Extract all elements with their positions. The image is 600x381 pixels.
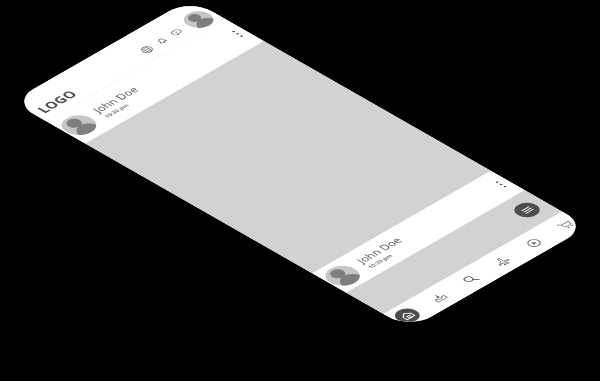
- button[interactable]: More options: [487, 176, 515, 192]
- button[interactable]: Profile: [178, 8, 220, 31]
- staticText: 10:30 pm: [102, 102, 131, 119]
- button[interactable]: Inbox: [421, 288, 456, 307]
- button[interactable]: John Doe: [312, 171, 525, 293]
- button[interactable]: Play: [516, 233, 551, 253]
- button[interactable]: Messages: [161, 24, 191, 41]
- staticText: LOGO: [32, 87, 81, 115]
- staticText: 10:30 pm: [365, 253, 395, 270]
- button[interactable]: Home: [390, 306, 425, 325]
- button[interactable]: Notifications: [146, 32, 176, 49]
- staticText: John Doe: [89, 84, 143, 115]
- button[interactable]: Menu: [509, 200, 545, 220]
- button[interactable]: Flights: [484, 251, 519, 271]
- staticText: John Doe: [352, 235, 406, 266]
- button[interactable]: More options: [224, 26, 251, 42]
- button[interactable]: Language: [132, 41, 161, 58]
- button[interactable]: Search: [453, 269, 488, 289]
- button[interactable]: Cart: [547, 215, 582, 235]
- button[interactable]: John Doe: [46, 19, 264, 144]
